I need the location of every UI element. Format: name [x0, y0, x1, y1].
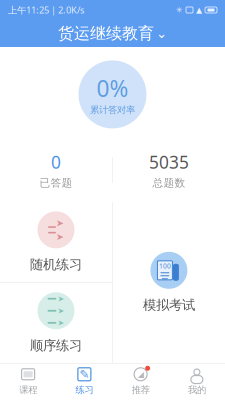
- staticText: 我的: [188, 384, 206, 396]
- staticText: 模拟考试: [143, 297, 195, 313]
- staticText: 已答题: [39, 176, 72, 190]
- staticText: 练习: [75, 384, 93, 396]
- button[interactable]: ✎: [56, 363, 112, 400]
- staticText: 随机练习: [30, 256, 82, 273]
- staticText: ➤: [57, 318, 64, 327]
- staticText: 货运继续教育: [58, 24, 154, 43]
- staticText: 累计答对率: [90, 104, 135, 116]
- staticText: 总题数: [152, 176, 185, 190]
- staticText: 顺序练习: [30, 337, 82, 354]
- staticText: ➤: [57, 294, 64, 303]
- button[interactable]: ◢: [112, 363, 169, 400]
- staticText: ➤: [56, 231, 64, 242]
- button[interactable]: 课程: [0, 363, 56, 400]
- staticText: 推荐: [132, 384, 150, 396]
- staticText: ✎: [79, 367, 89, 381]
- staticText: 0%: [96, 73, 128, 103]
- staticText: ◢: [138, 370, 144, 379]
- staticText: 100: [159, 261, 171, 270]
- button[interactable]: ➤: [0, 283, 112, 363]
- staticText: 课程: [19, 384, 37, 396]
- staticText: 上午11:25 | 2.0K/s: [8, 4, 84, 16]
- staticText: ➤: [56, 218, 64, 228]
- staticText: ✳: [176, 5, 183, 15]
- staticText: 5035: [149, 150, 189, 173]
- button[interactable]: 货运继续教育: [0, 20, 225, 47]
- staticText: ➤: [57, 306, 64, 315]
- staticText: 0: [51, 150, 61, 173]
- staticText: ⌄: [156, 26, 167, 41]
- button[interactable]: 我的: [169, 363, 225, 400]
- staticText: ▲: [196, 5, 202, 15]
- button[interactable]: ➤: [0, 202, 112, 282]
- button[interactable]: 100: [113, 202, 225, 363]
